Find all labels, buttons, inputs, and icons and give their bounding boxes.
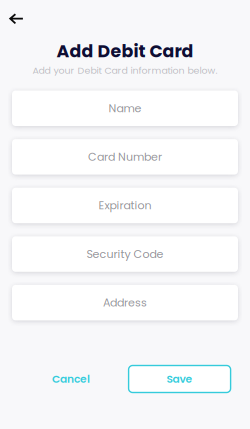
button[interactable]: Name [12, 90, 238, 126]
staticText: Name [108, 100, 141, 116]
staticText: Card Number [88, 149, 162, 165]
button[interactable]: Cancel [35, 365, 107, 392]
staticText: Security Code [86, 246, 163, 262]
staticText: Address [103, 295, 147, 310]
staticText: Add Debit Card [56, 39, 193, 63]
staticText: Add your Debit Card information below. [32, 64, 217, 77]
button[interactable]: Back [10, 10, 24, 28]
staticText: Save [167, 371, 193, 386]
staticText: Expiration [98, 198, 151, 213]
button[interactable]: Address [12, 285, 238, 320]
button[interactable]: Security Code [12, 236, 238, 272]
staticText: Cancel [52, 371, 90, 386]
button[interactable]: Expiration [12, 188, 238, 223]
button[interactable]: Save [129, 365, 231, 392]
button[interactable]: Card Number [12, 139, 238, 175]
